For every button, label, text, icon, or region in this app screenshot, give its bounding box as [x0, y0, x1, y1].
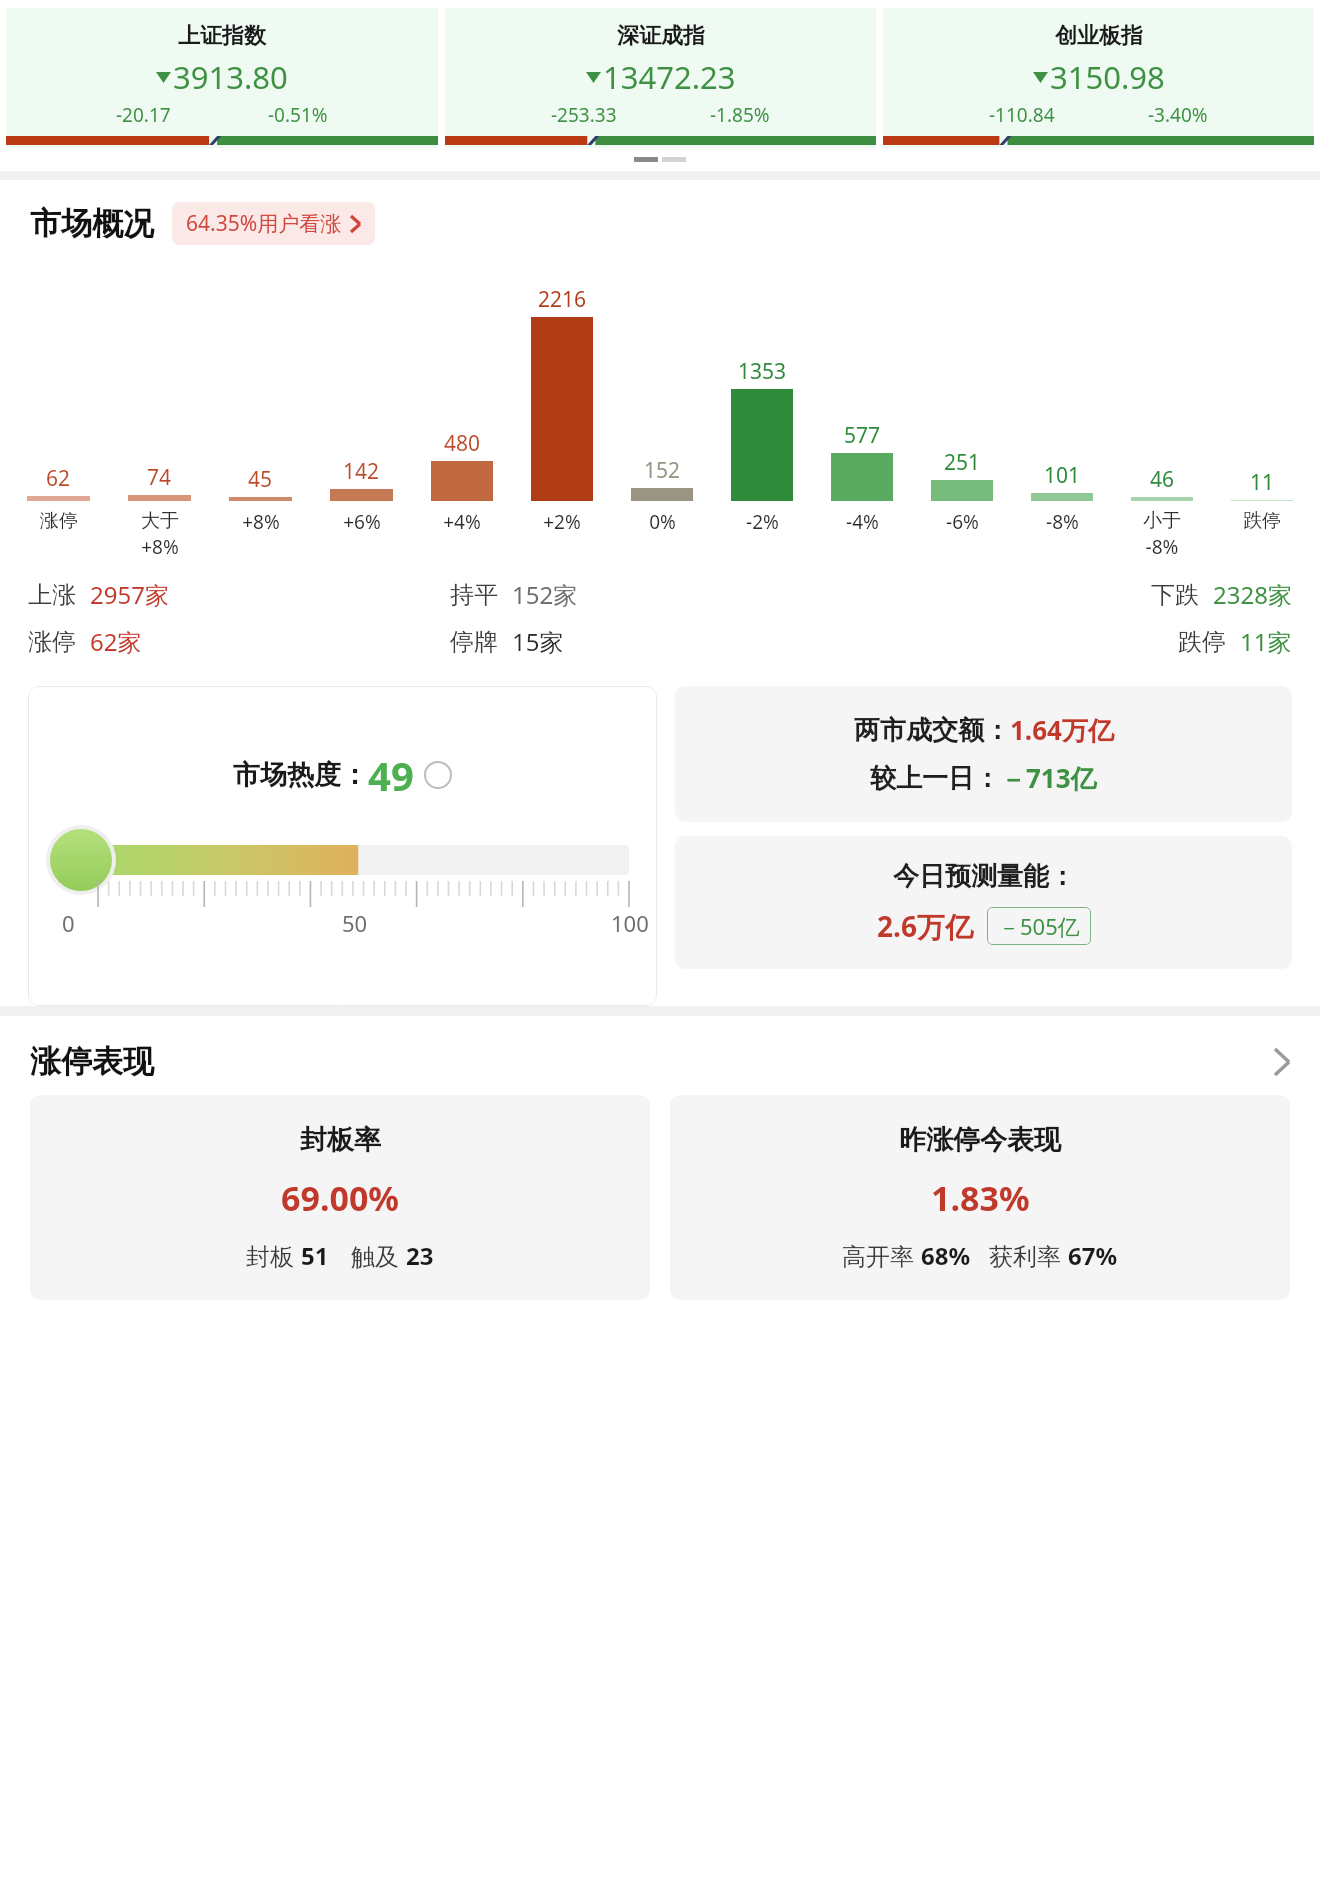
staticText: 100: [611, 908, 649, 938]
staticText: 封板率: [300, 1123, 381, 1157]
staticText: 11家: [1240, 625, 1292, 658]
staticText: -0.51%: [268, 102, 328, 128]
staticText: 13472.23: [603, 56, 736, 98]
staticText: 152: [644, 456, 681, 485]
staticText: 2957家: [90, 578, 169, 611]
staticText: 45: [248, 465, 273, 494]
other: 说明: [424, 761, 452, 789]
staticText: 0%: [649, 509, 676, 535]
staticText: 3913.80: [173, 56, 288, 98]
staticText: 较上一日：: [870, 762, 1000, 795]
staticText: 涨停表现: [30, 1042, 154, 1081]
button[interactable]: 深证成指: [445, 8, 876, 148]
staticText: 小于 -8%: [1143, 509, 1181, 560]
staticText: 2.6万亿: [877, 907, 973, 945]
staticText: 251: [944, 448, 981, 477]
staticText: 昨涨停今表现: [899, 1123, 1061, 1157]
staticText: 11: [1250, 468, 1275, 497]
staticText: 152家: [512, 578, 578, 611]
staticText: 1353: [738, 357, 787, 386]
other: 更多: [1274, 1048, 1290, 1076]
staticText: 跌停: [1178, 627, 1226, 657]
staticText: +8%: [242, 509, 280, 535]
staticText: 1.64万亿: [1010, 712, 1114, 748]
staticText: 1.83%: [931, 1175, 1030, 1221]
staticText: -6%: [946, 509, 979, 535]
staticText: 下跌: [1151, 580, 1199, 610]
button[interactable]: 今日预测量能：: [675, 836, 1292, 969]
staticText: 46: [1150, 465, 1175, 494]
staticText: 15家: [512, 625, 564, 658]
staticText: 67%: [1068, 1239, 1118, 1272]
button[interactable]: 市场热度：: [28, 686, 657, 1006]
staticText: -8%: [1046, 509, 1079, 535]
staticText: 两市成交额：: [854, 714, 1010, 747]
button[interactable]: 上证指数: [6, 8, 438, 148]
staticText: 62家: [90, 625, 142, 658]
staticText: 市场热度：: [233, 758, 368, 792]
button[interactable]: 涨停表现: [0, 1016, 1320, 1095]
staticText: +2%: [543, 509, 581, 535]
staticText: 深证成指: [617, 22, 705, 50]
staticText: 69.00%: [281, 1175, 400, 1221]
staticText: -110.84: [989, 102, 1055, 128]
staticText: 大于 +8%: [141, 509, 179, 560]
staticText: 创业板指: [1055, 22, 1143, 50]
staticText: -2%: [746, 509, 779, 535]
staticText: 74: [147, 463, 172, 492]
button[interactable]: 封板率: [30, 1095, 650, 1300]
staticText: 49: [368, 748, 414, 802]
staticText: 涨停: [28, 627, 76, 657]
staticText: +6%: [343, 509, 381, 535]
staticText: -4%: [846, 509, 879, 535]
staticText: －713亿: [1000, 760, 1097, 796]
staticText: －505亿: [998, 911, 1080, 941]
staticText: 577: [844, 421, 881, 450]
button[interactable]: 两市成交额：: [675, 686, 1292, 822]
staticText: 今日预测量能：: [893, 860, 1075, 893]
staticText: 停牌: [450, 627, 498, 657]
staticText: 64.35%用户看涨: [186, 209, 342, 238]
staticText: -253.33: [551, 102, 617, 128]
staticText: 封板: [246, 1239, 301, 1272]
staticText: -1.85%: [710, 102, 770, 128]
staticText: 0: [62, 908, 75, 938]
staticText: +4%: [443, 509, 481, 535]
staticText: 142: [343, 457, 380, 486]
staticText: 101: [1044, 461, 1081, 490]
staticText: 持平: [450, 580, 498, 610]
staticText: 上涨: [28, 580, 76, 610]
staticText: 触及: [351, 1239, 406, 1272]
staticText: 51: [301, 1239, 329, 1272]
staticText: 3150.98: [1050, 56, 1165, 98]
staticText: 50: [342, 908, 368, 938]
staticText: 高开率: [842, 1239, 921, 1272]
staticText: 480: [444, 429, 481, 458]
button[interactable]: 64.35%用户看涨: [172, 202, 375, 245]
staticText: 62: [46, 464, 71, 493]
staticText: 上证指数: [178, 22, 266, 50]
staticText: 68%: [921, 1239, 971, 1272]
staticText: 23: [406, 1239, 434, 1272]
staticText: 获利率: [989, 1239, 1068, 1272]
staticText: 跌停: [1243, 509, 1281, 533]
staticText: -3.40%: [1148, 102, 1208, 128]
staticText: 2216: [538, 285, 587, 314]
staticText: 2328家: [1213, 578, 1292, 611]
staticText: 市场概况: [30, 204, 154, 243]
staticText: 涨停: [40, 509, 78, 533]
button[interactable]: 创业板指: [883, 8, 1314, 148]
button[interactable]: 昨涨停今表现: [670, 1095, 1290, 1300]
staticText: -20.17: [116, 102, 171, 128]
